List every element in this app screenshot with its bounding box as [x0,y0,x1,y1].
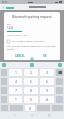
button[interactable]: Back [12,113,17,118]
staticText: 8 [30,88,32,93]
staticText: CANCEL [15,54,25,57]
button[interactable]: * [9,96,22,103]
staticText: 2 [30,70,32,75]
staticText: 1234 [7,26,13,30]
staticText: Usually 0000 or 1234 [7,34,28,37]
button[interactable]: 1 [9,69,22,76]
staticText: Bluetooth pairing request [7,15,57,19]
button[interactable]: Emoji [30,63,34,67]
button[interactable]: 5 [24,78,38,85]
staticText: 7 [15,88,17,93]
staticText: * [15,97,17,102]
button[interactable]: 9 [40,87,54,94]
staticText: 6 [46,79,48,84]
staticText: 9 [46,88,48,93]
button[interactable]: Sticker [2,63,6,67]
staticText: 4 [15,79,17,84]
button[interactable]: 7 [9,87,22,94]
staticText: # [46,97,49,102]
staticText: 0 [29,106,31,111]
staticText: 0 [30,97,32,102]
staticText: OK [43,54,47,57]
staticText: 1 [15,70,17,75]
button[interactable]: Back [0,4,15,10]
staticText: You may also need to type this PIN on th… [7,45,57,51]
button[interactable]: Home [30,113,35,118]
button[interactable]: CANCEL [7,54,32,57]
button[interactable]: Settings [58,63,62,67]
button[interactable]: 8 [24,87,38,94]
staticText: PIN [7,22,12,25]
button[interactable]: 3 [40,69,54,76]
button[interactable]: OK [32,54,57,57]
button[interactable]: 6 [40,78,54,85]
button[interactable]: 2 [24,69,38,76]
button[interactable]: PIN contains letters or symbols [7,40,57,43]
button[interactable]: Delete [56,69,63,76]
button[interactable]: 0 [25,105,35,111]
staticText: 3 [46,70,48,75]
button[interactable]: 0 [24,96,38,103]
staticText: 5 [30,79,32,84]
button[interactable]: Recents [47,113,52,118]
staticText: PIN contains letters or symbols [12,40,44,43]
button[interactable]: # [40,96,54,103]
button[interactable]: 4 [9,78,22,85]
